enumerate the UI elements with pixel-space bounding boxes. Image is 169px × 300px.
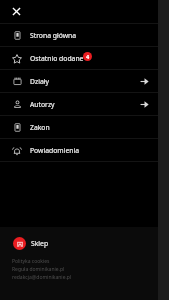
button[interactable]: Działy	[0, 70, 158, 93]
staticText: Autorzy	[30, 100, 55, 109]
button[interactable]: Powiadomienia	[0, 139, 158, 162]
staticText: redakcja@dominikanie.pl	[12, 274, 72, 281]
button[interactable]: Zakon	[0, 116, 158, 139]
button[interactable]: Strona główna	[0, 24, 158, 47]
staticText: Strona główna	[30, 31, 77, 40]
staticText: 4	[86, 53, 90, 60]
other: Open Autorzy	[140, 100, 149, 109]
staticText: Zakon	[30, 123, 50, 132]
other: Open Działy	[140, 77, 149, 86]
button[interactable]: Ostatnio dodane	[0, 47, 158, 70]
button[interactable]: Sklep	[0, 232, 158, 255]
button[interactable]: Close	[5, 0, 27, 22]
staticText: Sklep	[31, 239, 49, 248]
staticText: Reguła dominikanie.pl	[12, 266, 65, 273]
staticText: Ostatnio dodane	[30, 54, 84, 63]
staticText: Polityka cookies	[12, 258, 50, 265]
button[interactable]: Autorzy	[0, 93, 158, 116]
staticText: Działy	[30, 77, 49, 86]
staticText: Powiadomienia	[30, 146, 79, 155]
